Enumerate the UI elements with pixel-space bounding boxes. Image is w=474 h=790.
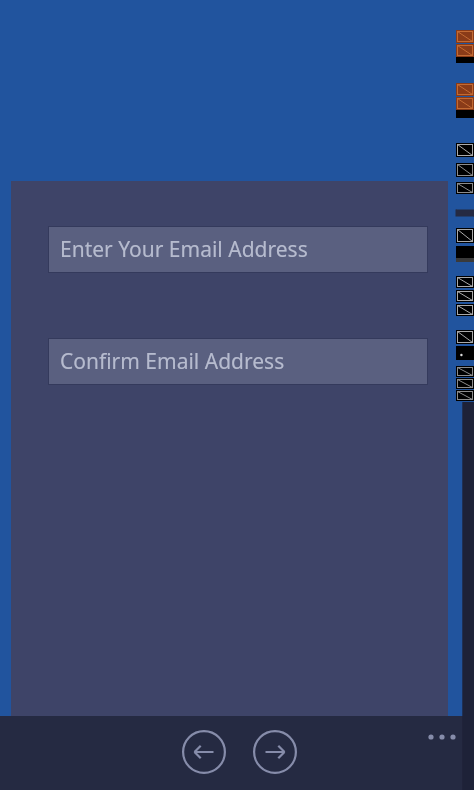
button[interactable]: Back [179,727,229,777]
staticText: Account Creation [136,378,339,413]
button[interactable]: More options [420,724,464,750]
button[interactable]: Enter Your Email Address [48,226,428,273]
staticText: Confirm Email Address [60,347,285,376]
staticText: Enter Your Email Address [60,235,308,264]
button[interactable]: Next [250,727,300,777]
button[interactable]: Confirm Email Address [48,338,428,385]
